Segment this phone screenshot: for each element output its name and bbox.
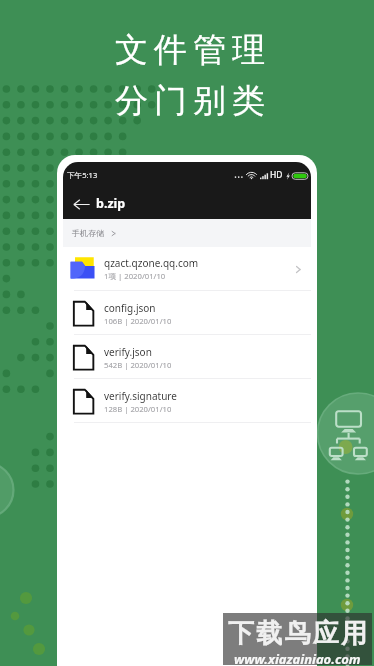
staticText: www.xiazainiao.com <box>234 650 361 665</box>
staticText: 下载鸟应用 <box>227 617 368 650</box>
button[interactable]: verify.signature <box>63 379 311 423</box>
staticText: 下午5:13 <box>67 170 98 180</box>
staticText: qzact.qzone.qq.com <box>104 256 199 270</box>
staticText: config.json <box>104 301 156 315</box>
button[interactable]: 手机存储 <box>63 219 311 247</box>
staticText: 1项 | 2020/01/10 <box>104 271 166 282</box>
staticText: 分门别类 <box>112 80 268 122</box>
staticText: HD <box>270 169 283 181</box>
staticText: verify.json <box>104 345 152 359</box>
button[interactable]: Back <box>68 191 94 217</box>
staticText: 文件管理 <box>112 29 268 71</box>
staticText: 手机存储 <box>72 228 104 238</box>
button[interactable]: config.json <box>63 291 311 335</box>
staticText: 542B | 2020/01/10 <box>104 360 172 370</box>
staticText: 128B | 2020/01/10 <box>104 404 172 414</box>
staticText: verify.signature <box>104 389 177 403</box>
staticText: b.zip <box>96 195 126 212</box>
staticText: 106B | 2020/01/10 <box>104 316 172 326</box>
button[interactable]: qzact.qzone.qq.com <box>63 247 311 291</box>
button[interactable]: verify.json <box>63 335 311 379</box>
